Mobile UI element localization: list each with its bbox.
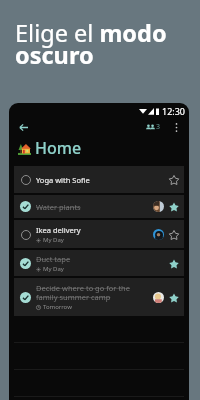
staticText: Tomorrow <box>43 303 72 311</box>
staticText: Decide where to go for the family summer… <box>36 283 150 302</box>
staticText: Water plants <box>36 202 81 212</box>
button[interactable]: Back <box>15 119 32 136</box>
button[interactable]: More options <box>169 120 183 134</box>
staticText: Ikea delivery <box>36 225 81 235</box>
button[interactable]: Star <box>167 291 180 304</box>
staticText: My Day <box>43 265 64 273</box>
staticText: Elige el modo oscuro <box>15 17 190 71</box>
button[interactable]: Star <box>167 200 180 213</box>
button[interactable]: Members <box>144 120 163 134</box>
button[interactable]: Duct tape <box>14 250 184 276</box>
staticText: Yoga with Sofie <box>36 175 90 185</box>
button[interactable]: Decide where to go for the family summer… <box>14 278 184 316</box>
button[interactable]: Yoga with Sofie <box>14 166 184 193</box>
button[interactable]: Star <box>167 173 180 186</box>
button[interactable]: Star <box>167 257 180 270</box>
button[interactable]: Water plants <box>14 195 184 218</box>
staticText: Home <box>35 137 82 159</box>
staticText: 3 <box>156 122 161 132</box>
staticText: 12:30 <box>162 105 186 117</box>
button[interactable]: Ikea delivery <box>14 220 184 248</box>
button[interactable]: Star <box>167 228 180 241</box>
staticText: Duct tape <box>36 254 71 264</box>
staticText: My Day <box>43 236 64 244</box>
